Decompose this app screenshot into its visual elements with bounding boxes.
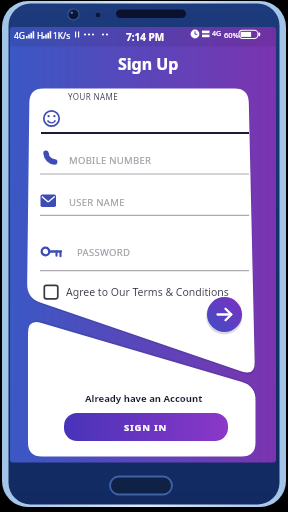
staticText: YOUR NAME [68, 91, 119, 102]
staticText: 7:14 PM [126, 30, 165, 44]
button[interactable] [40, 189, 249, 216]
staticText: USER NAME [69, 196, 125, 209]
staticText: H [37, 30, 44, 42]
button[interactable] [45, 284, 245, 302]
button[interactable] [40, 243, 249, 271]
staticText: SIGN IN [124, 421, 168, 434]
button[interactable] [40, 148, 249, 175]
button[interactable] [207, 297, 242, 332]
staticText: PASSWORD [77, 246, 131, 259]
staticText: Already have an Account [85, 392, 203, 405]
staticText: Sign Up [118, 53, 179, 75]
staticText: MOBILE NUMBER [69, 154, 152, 167]
staticText: 4G [212, 29, 222, 39]
staticText: Agree to Our Terms & Conditions [66, 285, 229, 299]
staticText: 1K/s [53, 30, 71, 42]
staticText: 60% [224, 30, 239, 40]
button[interactable] [40, 105, 249, 134]
button[interactable]: SIGN IN [64, 413, 228, 441]
staticText: 4G [14, 30, 26, 42]
